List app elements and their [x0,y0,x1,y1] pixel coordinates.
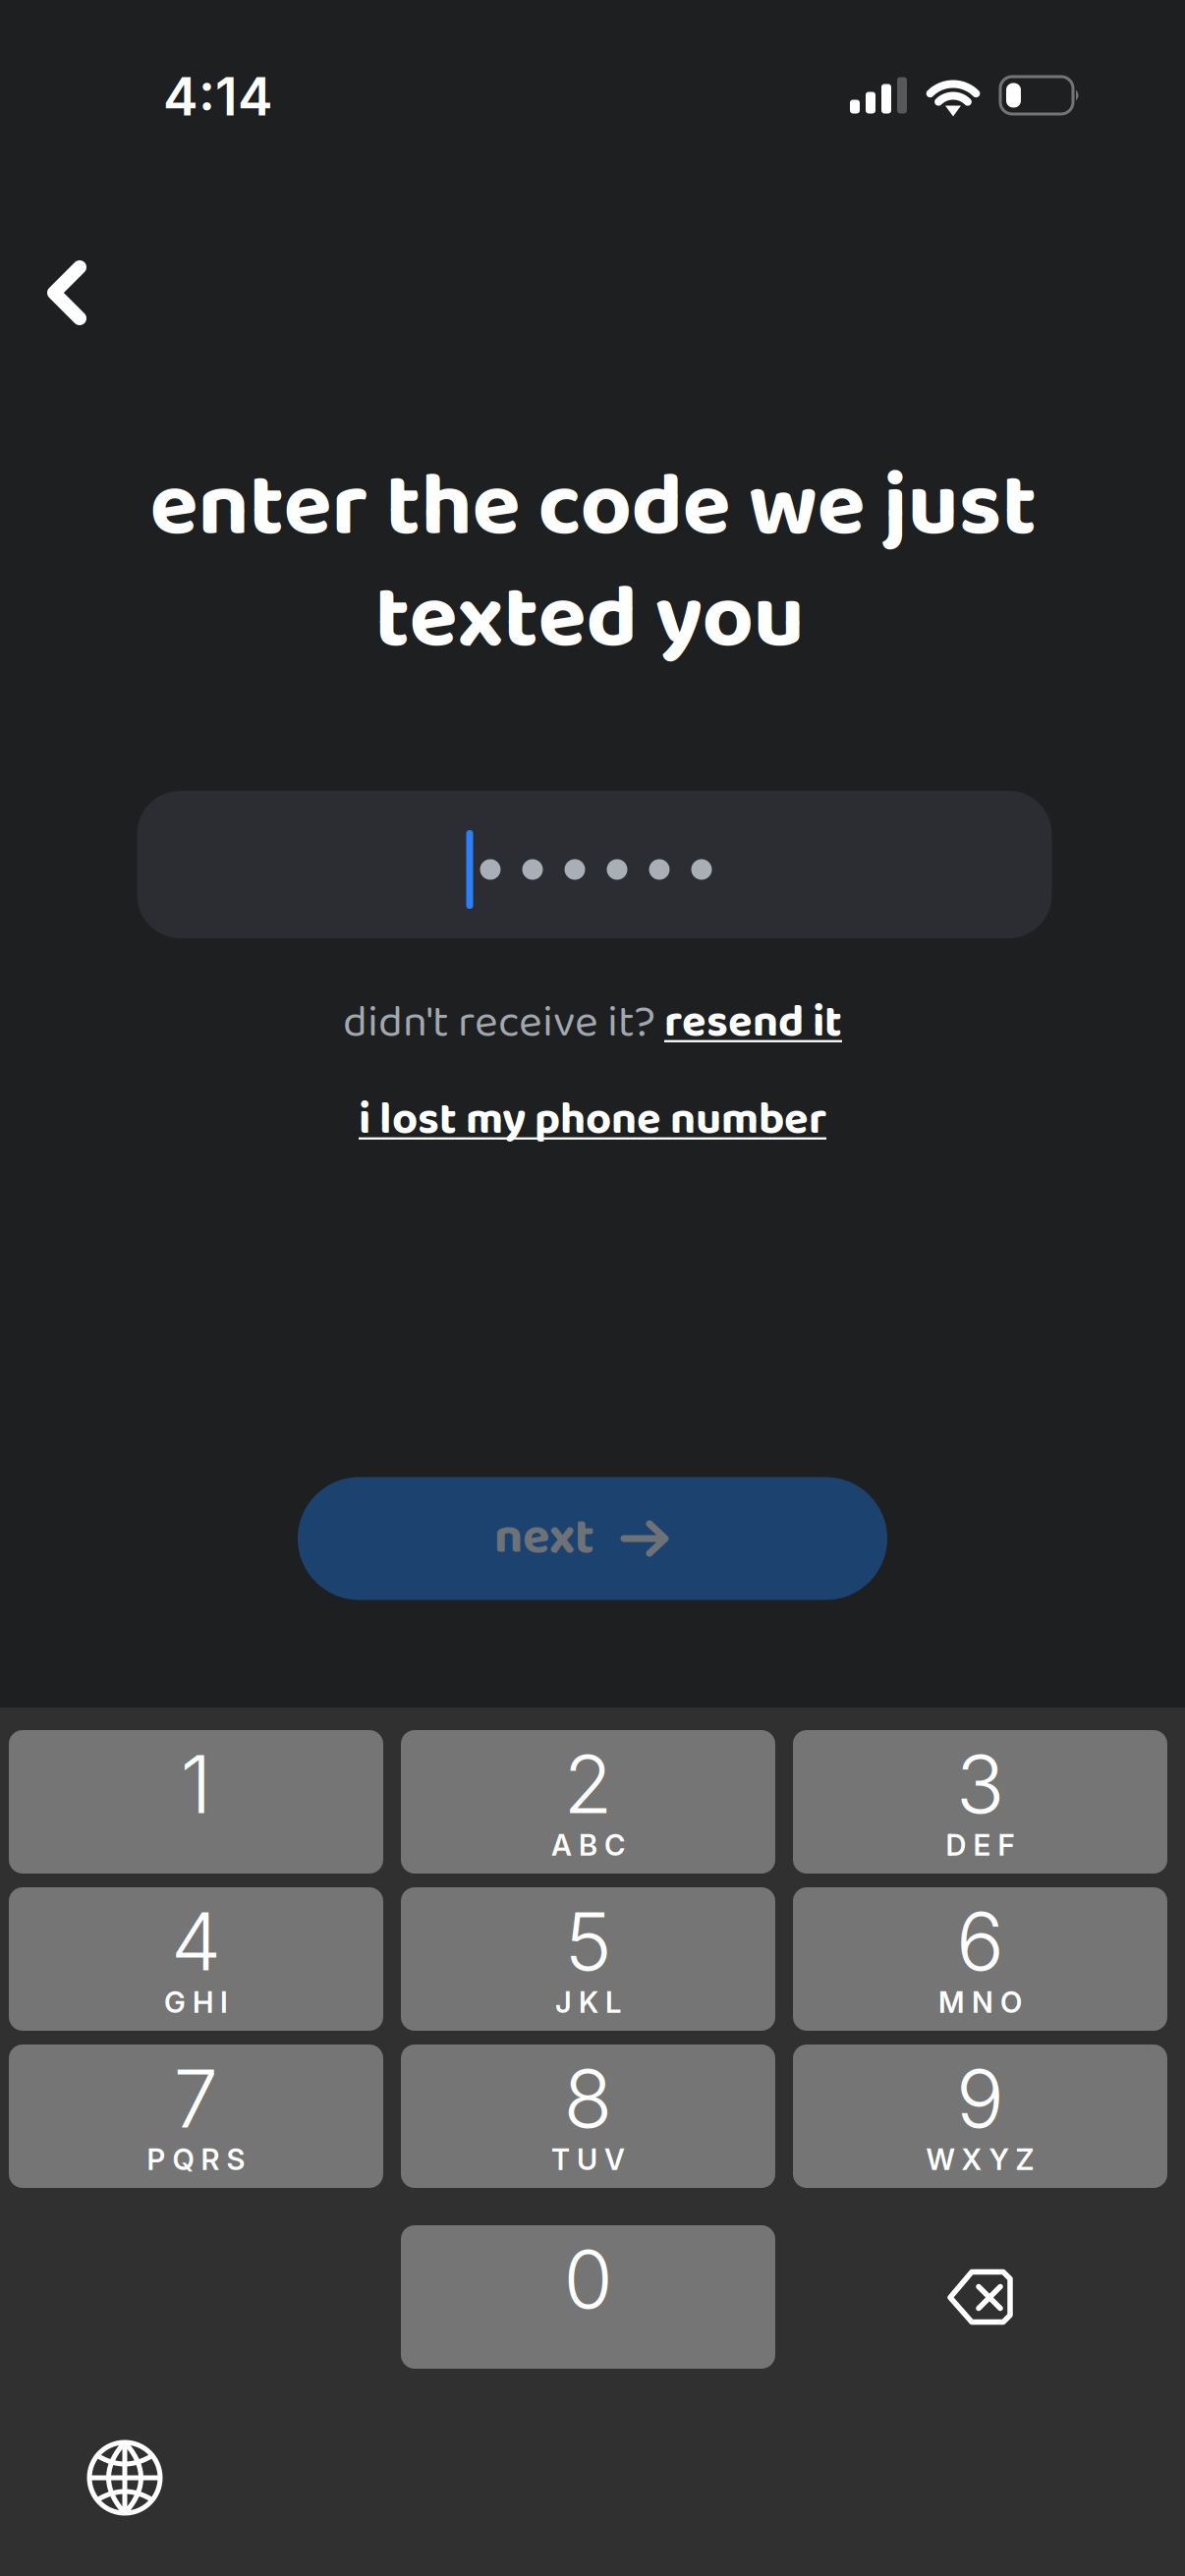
button[interactable]: 3 [793,1730,1167,1874]
button[interactable]: Back [0,224,136,362]
staticText: P Q R S [147,2142,245,2177]
staticText: next [494,1498,594,1579]
button[interactable]: 1 [9,1730,383,1874]
staticText: didn't receive it? [343,988,664,1060]
button[interactable]: resend it [664,988,842,1060]
button[interactable]: next [298,1477,887,1600]
staticText: 4 [171,1893,221,1990]
staticText: D E F [946,1828,1015,1863]
staticText: 5 [564,1893,612,1990]
staticText: 2 [564,1736,613,1832]
staticText: 1 [180,1736,212,1832]
button[interactable]: 9 [793,2044,1167,2188]
staticText: 9 [956,2050,1004,2147]
button[interactable]: 8 [401,2044,775,2188]
button[interactable]: 0 [401,2225,775,2369]
staticText: G H I [164,1985,228,2020]
staticText: texted you [375,549,804,693]
staticText: 0 [564,2231,613,2328]
staticText: resend it [664,988,842,1060]
button[interactable]: 2 [401,1730,775,1874]
staticText: enter the code we just [150,437,1037,581]
staticText: 7 [173,2050,219,2147]
staticText: J K L [555,1985,621,2020]
button[interactable]: i lost my phone number [317,1086,868,1156]
staticText: M N O [938,1985,1022,2020]
button[interactable]: 5 [401,1887,775,2031]
staticText: W X Y Z [926,2142,1034,2177]
button[interactable]: 6 [793,1887,1167,2031]
button[interactable]: Delete [793,2225,1167,2369]
staticText: 3 [956,1736,1004,1832]
button[interactable]: 7 [9,2044,383,2188]
staticText: 6 [956,1893,1004,1990]
staticText: 8 [564,2050,613,2147]
staticText: 4:14 [163,65,273,128]
staticText: T U V [551,2142,625,2177]
button[interactable]: Switch keyboard [56,2409,194,2547]
staticText: i lost my phone number [359,1085,826,1157]
button[interactable]: 4 [9,1887,383,2031]
staticText: A B C [551,1828,625,1863]
